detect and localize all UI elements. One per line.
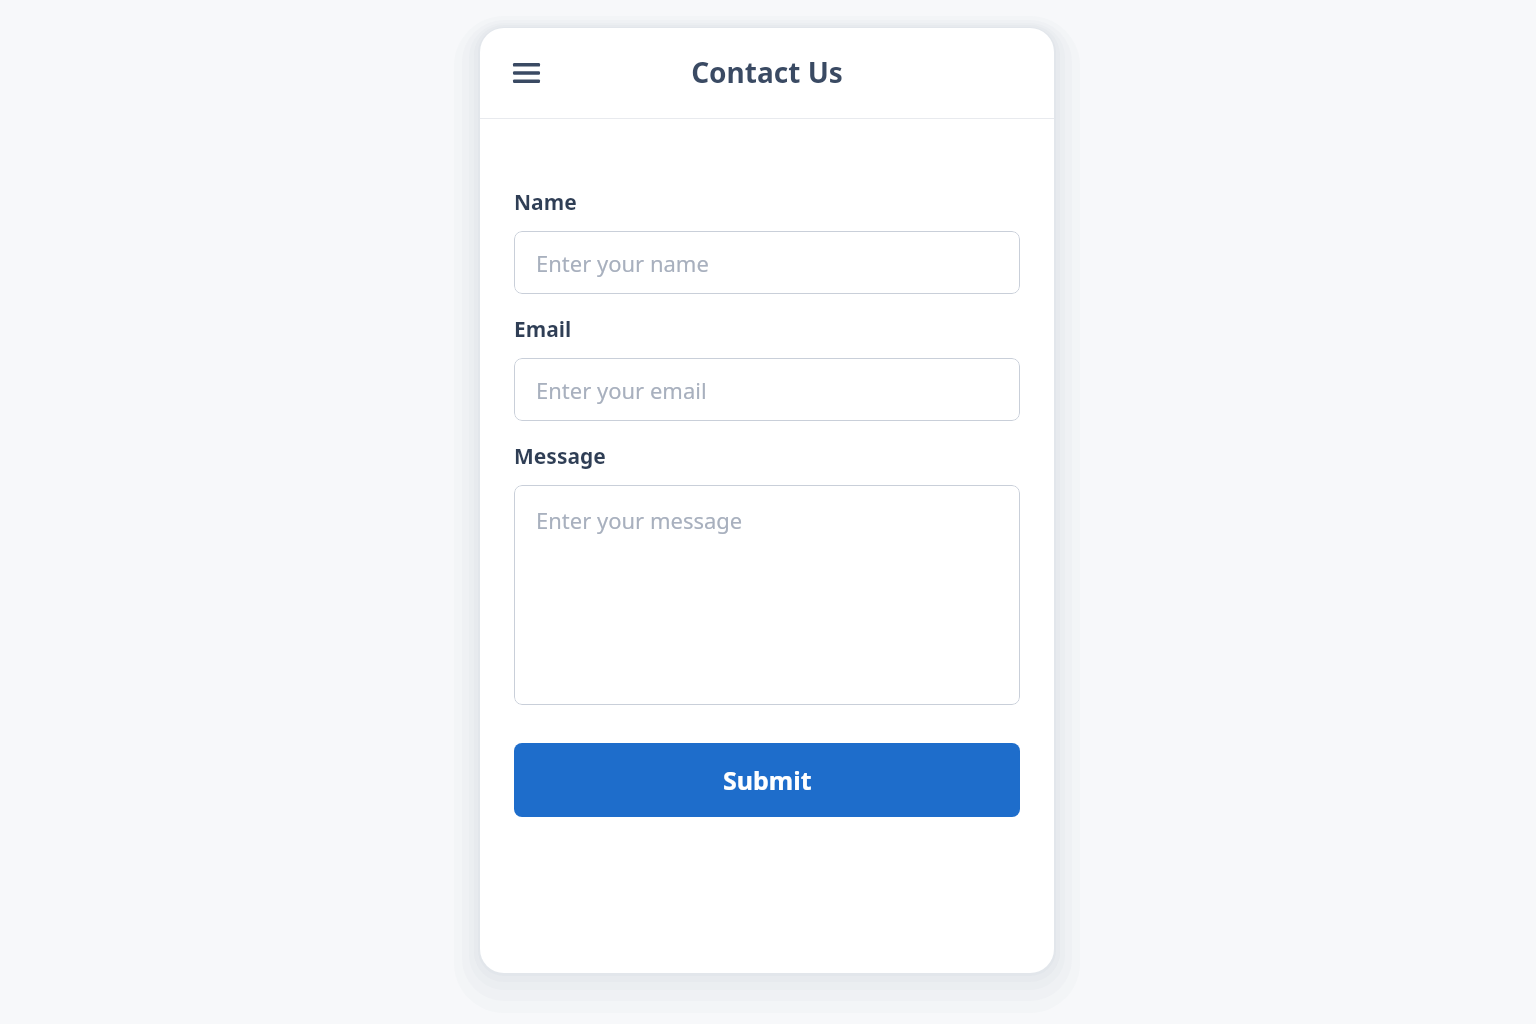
staticText: Enter your email [536, 375, 707, 405]
button[interactable]: Enter your message [514, 485, 1020, 705]
button[interactable]: Enter your email [514, 358, 1020, 421]
staticText: Submit [723, 763, 812, 797]
button[interactable]: Submit [514, 743, 1020, 817]
staticText: Name [514, 188, 577, 217]
button[interactable]: Open navigation menu [500, 47, 552, 99]
button[interactable]: Enter your name [514, 231, 1020, 294]
staticText: Enter your message [536, 505, 743, 535]
staticText: Enter your name [536, 248, 709, 278]
staticText: Email [514, 315, 572, 344]
staticText: Message [514, 442, 606, 471]
staticText: Contact Us [691, 53, 843, 91]
